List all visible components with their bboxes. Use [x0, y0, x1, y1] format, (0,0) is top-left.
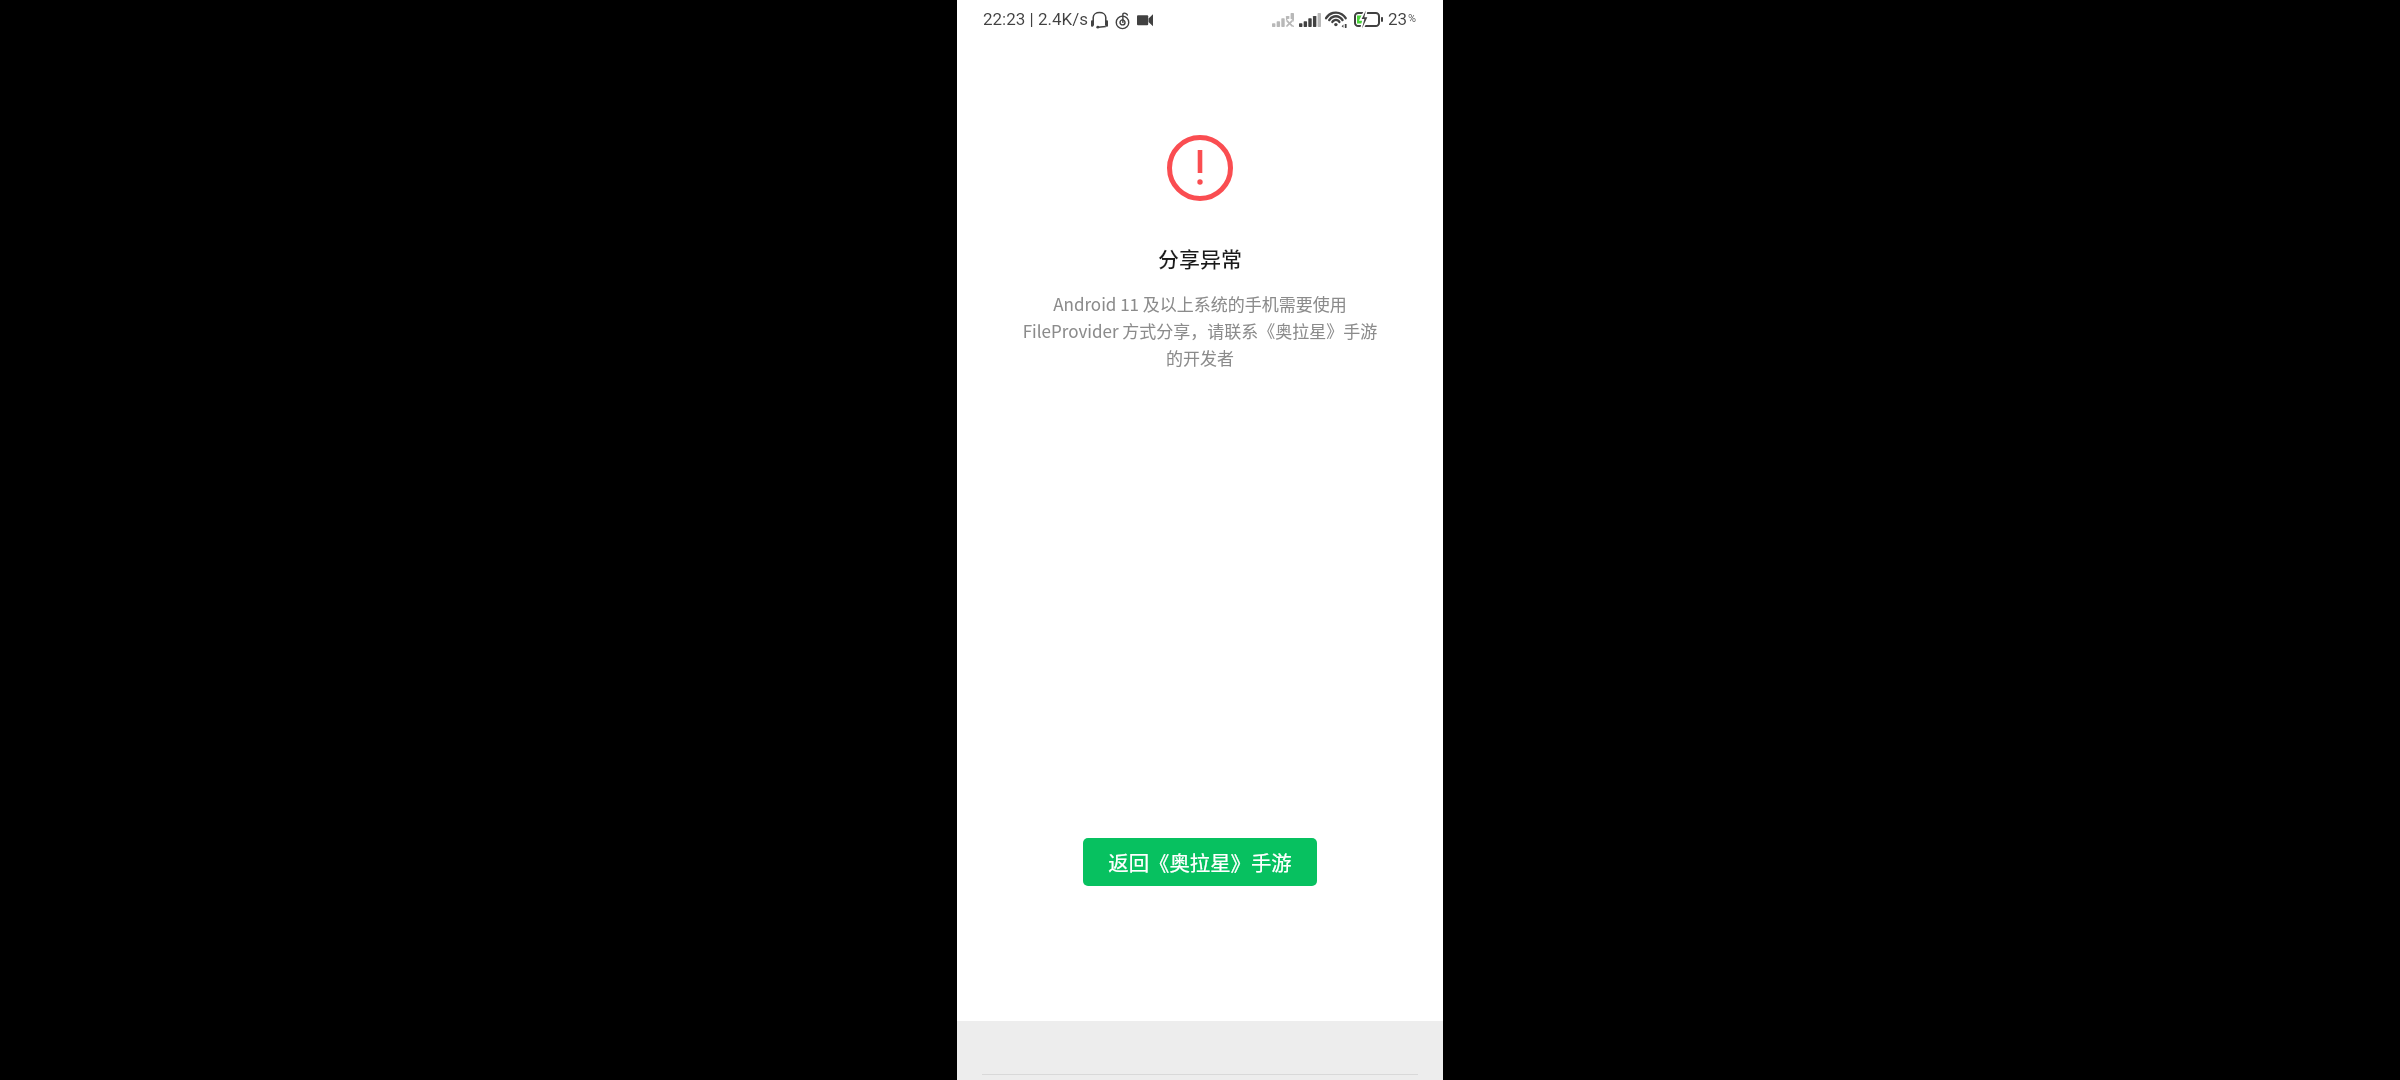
staticText: Android 11 及以上系统的手机需要使用 FileProvider 方式分… [957, 291, 1443, 370]
staticText: % [1408, 12, 1417, 25]
staticText: 23 [1388, 9, 1408, 29]
staticText: 返回《奥拉星》手游 [1108, 847, 1292, 877]
button[interactable]: 返回《奥拉星》手游 [1083, 838, 1317, 886]
staticText: 分享异常 [957, 243, 1443, 273]
other: Error [1167, 135, 1233, 201]
staticText: 22:23 | 2.4K/s [983, 9, 1088, 29]
